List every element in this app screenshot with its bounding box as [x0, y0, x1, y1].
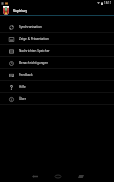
staticText: Benachrichtigungen [19, 61, 49, 65]
button[interactable]: Benachrichtigungen [0, 57, 114, 69]
button[interactable]: Recent apps [69, 168, 92, 182]
staticText: Magdeburg [13, 9, 27, 12]
button[interactable]: Home [46, 168, 69, 182]
button[interactable]: Zeige & Präsentation [0, 33, 114, 45]
button[interactable]: Nachrichten Speicher [0, 45, 114, 57]
button[interactable]: Feedback [0, 69, 114, 81]
staticText: 18:11 [104, 1, 112, 5]
staticText: Feedback [19, 73, 33, 77]
staticText: Über [19, 97, 27, 101]
staticText: Nachrichten Speicher [19, 49, 50, 53]
staticText: Zeige & Präsentation [19, 37, 49, 41]
staticText: Hilfe [19, 85, 26, 89]
button[interactable]: Synchronisation [0, 21, 114, 33]
button[interactable]: Über [0, 93, 114, 105]
button[interactable]: Hilfe [0, 81, 114, 93]
staticText: Synchronisation [19, 25, 42, 29]
button[interactable]: Magdeburg [0, 6, 114, 15]
button[interactable]: Back [23, 168, 46, 182]
